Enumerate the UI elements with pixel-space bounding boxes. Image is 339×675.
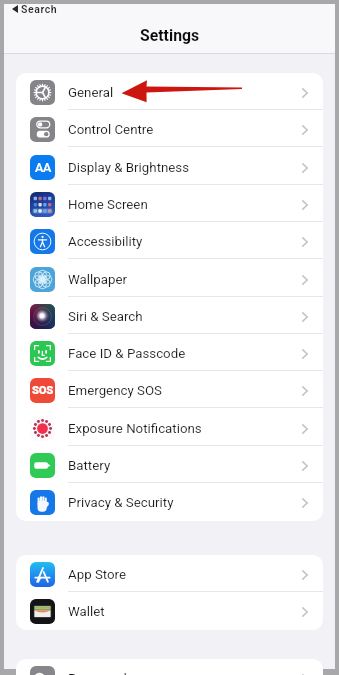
staticText: Passwords [68, 671, 134, 675]
staticText: Wallet [68, 604, 105, 620]
staticText: General [68, 85, 114, 101]
button[interactable]: App Store [16, 555, 323, 592]
staticText: Battery [68, 458, 111, 474]
staticText: Exposure Notifications [68, 421, 202, 437]
button[interactable]: Battery [16, 446, 323, 483]
button[interactable]: Home Screen [16, 185, 323, 222]
staticText: Search [21, 3, 58, 15]
button[interactable]: Wallet [16, 592, 323, 629]
staticText: Privacy & Security [68, 495, 174, 511]
button[interactable]: AA [16, 148, 323, 185]
button[interactable]: Exposure Notifications [16, 409, 323, 446]
staticText: Display & Brightness [68, 160, 190, 176]
button[interactable]: Face ID & Passcode [16, 334, 323, 371]
staticText: Accessibility [68, 234, 143, 250]
button[interactable]: Wallpaper [16, 260, 323, 297]
button[interactable]: SOS [16, 371, 323, 408]
staticText: AA [35, 160, 51, 175]
button[interactable]: Privacy & Security [16, 483, 323, 520]
staticText: SOS [32, 384, 53, 397]
staticText: Settings [140, 26, 200, 45]
staticText: Emergency SOS [68, 383, 163, 399]
staticText: Siri & Search [68, 309, 143, 325]
staticText: App Store [68, 567, 127, 583]
button[interactable]: Passwords [16, 659, 323, 675]
button[interactable]: Control Centre [16, 110, 323, 147]
button[interactable]: General [16, 73, 323, 110]
staticText: Home Screen [68, 197, 148, 213]
staticText: Wallpaper [68, 272, 128, 288]
button[interactable]: Siri & Search [16, 297, 323, 334]
staticText: Control Centre [68, 122, 154, 138]
button[interactable]: Accessibility [16, 222, 323, 259]
staticText: Face ID & Passcode [68, 346, 186, 362]
button[interactable]: Search [10, 2, 60, 16]
